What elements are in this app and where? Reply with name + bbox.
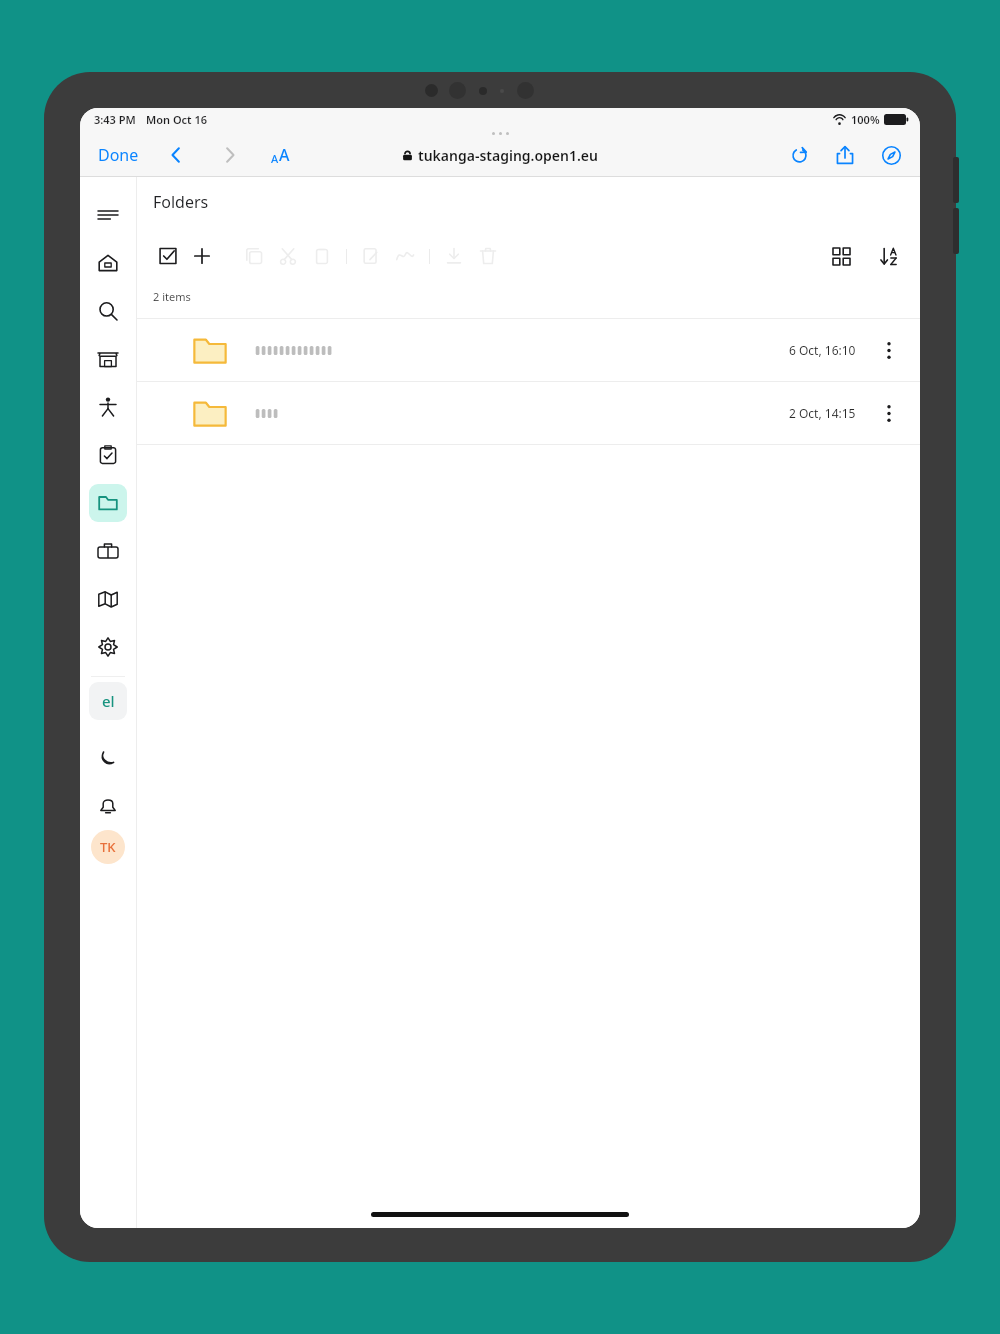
button[interactable]: Forward [215,140,245,170]
button[interactable]: TK [91,830,125,864]
button[interactable]: Dark mode [89,739,127,777]
button[interactable]: Home [89,244,127,282]
staticText: tukanga-staging.open1.eu [418,146,598,165]
button[interactable]: Tasks [89,436,127,474]
staticText: Folders [153,191,209,213]
staticText: A [279,144,290,166]
button[interactable]: More options [874,398,904,428]
button[interactable]: Grid view [824,239,858,273]
button[interactable]: Delete [471,239,505,273]
staticText: TK [100,838,116,856]
button[interactable]: Open in Safari [876,140,906,170]
button[interactable]: Edit [354,239,388,273]
button[interactable]: Copy [237,239,271,273]
button[interactable]: Done [92,140,145,170]
button[interactable]: Accessibility [89,388,127,426]
button[interactable]: Briefcase [89,532,127,570]
button[interactable]: Add [185,239,219,273]
button[interactable]: Download [437,239,471,273]
staticText: 100% [851,112,880,127]
button[interactable]: Text size [267,140,294,170]
button[interactable]: Menu [89,196,127,234]
button[interactable]: Share [830,140,860,170]
staticText: A [271,151,279,166]
button[interactable]: Paste [305,239,339,273]
button[interactable]: 2 Oct, 14:15 [137,382,920,444]
button[interactable]: Sort [872,239,906,273]
staticText: 6 Oct, 16:10 [789,342,856,358]
button[interactable]: Cut [271,239,305,273]
button[interactable]: Folders [89,484,127,522]
button[interactable]: Map [89,580,127,618]
button[interactable]: Notifications [89,787,127,825]
staticText: Mon Oct 16 [146,112,207,127]
staticText: Done [98,144,139,166]
button[interactable]: Store [89,340,127,378]
staticText: 2 Oct, 14:15 [789,405,856,421]
button[interactable]: Search [89,292,127,330]
staticText: el [102,691,115,711]
button[interactable]: More options [874,335,904,365]
button[interactable]: Back [161,140,191,170]
staticText: 2 items [153,289,191,304]
button[interactable]: Select [151,239,185,273]
button[interactable]: 6 Oct, 16:10 [137,319,920,381]
staticText: 3:43 PM [94,112,136,127]
button[interactable]: el [89,682,127,720]
button[interactable]: Settings [89,628,127,666]
button[interactable]: Reload [784,140,814,170]
